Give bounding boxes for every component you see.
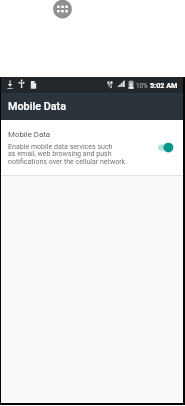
button[interactable]: All apps — [53, 0, 73, 20]
staticText: Mobile Data — [8, 100, 67, 113]
staticText: Enable mobile data services such as emai… — [8, 142, 128, 166]
staticText: 5:02 AM — [150, 81, 178, 89]
button[interactable]: Mobile Data — [1, 93, 183, 120]
button[interactable]: Mobile Data — [1, 120, 183, 175]
button[interactable]: Mobile data on — [156, 120, 178, 154]
staticText: Mobile Data — [8, 130, 51, 139]
staticText: 10% — [136, 82, 148, 89]
